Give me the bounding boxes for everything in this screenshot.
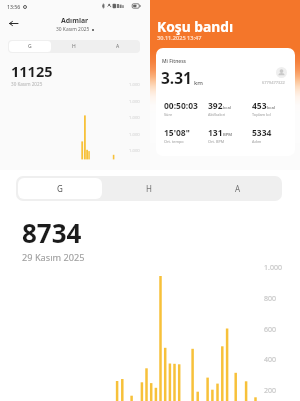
button[interactable]: A — [97, 41, 139, 52]
staticText: Akt/kalori — [208, 112, 226, 117]
staticText: 453 — [252, 100, 267, 112]
staticText: Koşu bandı — [157, 17, 234, 36]
staticText: 30 Kasım 2025 — [56, 26, 90, 33]
staticText: 600 — [264, 325, 277, 335]
staticText: kcal — [267, 105, 275, 111]
staticText: 30 Kasım 2025 — [11, 81, 43, 87]
staticText: 15'08" — [164, 127, 190, 139]
button[interactable]: A — [195, 178, 280, 199]
staticText: 29 Kasım 2025 — [22, 251, 85, 264]
staticText: Ort. tempo — [164, 139, 184, 144]
staticText: G — [28, 43, 32, 50]
button[interactable]: G — [18, 178, 102, 199]
button[interactable]: G — [9, 41, 51, 52]
staticText: 00:50:03 — [164, 100, 198, 112]
staticText: 131 — [208, 127, 223, 139]
staticText: 1.000 — [129, 148, 140, 154]
staticText: Ort. BPM — [208, 139, 225, 144]
staticText: kcal — [223, 105, 231, 111]
staticText: 800 — [264, 294, 277, 304]
staticText: 11125 — [11, 61, 53, 81]
staticText: 1.000 — [264, 263, 282, 273]
staticText: Adımlar — [61, 16, 89, 25]
staticText: 200 — [264, 386, 277, 396]
staticText: Adım — [252, 139, 262, 144]
staticText: H — [72, 43, 76, 50]
staticText: 1.000 — [129, 99, 140, 105]
staticText: 1.000 — [129, 82, 140, 88]
staticText: 392 — [208, 100, 223, 112]
staticText: 400 — [264, 355, 277, 365]
staticText: 5334 — [252, 127, 272, 139]
button[interactable]: H — [106, 178, 191, 199]
staticText: 1.000 — [129, 115, 140, 121]
staticText: km — [194, 79, 204, 87]
staticText: Toplam kcl — [252, 112, 271, 117]
button[interactable]: Back — [7, 19, 20, 28]
staticText: 1.000 — [129, 132, 140, 138]
staticText: 8734 — [22, 215, 82, 250]
staticText: 3.31 — [161, 67, 192, 88]
staticText: 13:56 — [7, 3, 21, 10]
staticText: Mi Fitness — [162, 58, 187, 65]
staticText: 30.11.2025 13:47 — [157, 34, 202, 42]
staticText: A — [235, 183, 241, 194]
staticText: G — [57, 183, 63, 194]
staticText: BPM — [223, 132, 233, 138]
staticText: Süre — [164, 112, 173, 117]
staticText: 6779477322 — [262, 80, 285, 85]
staticText: H — [146, 183, 152, 194]
staticText: A — [116, 43, 120, 50]
button[interactable]: H — [53, 41, 95, 52]
